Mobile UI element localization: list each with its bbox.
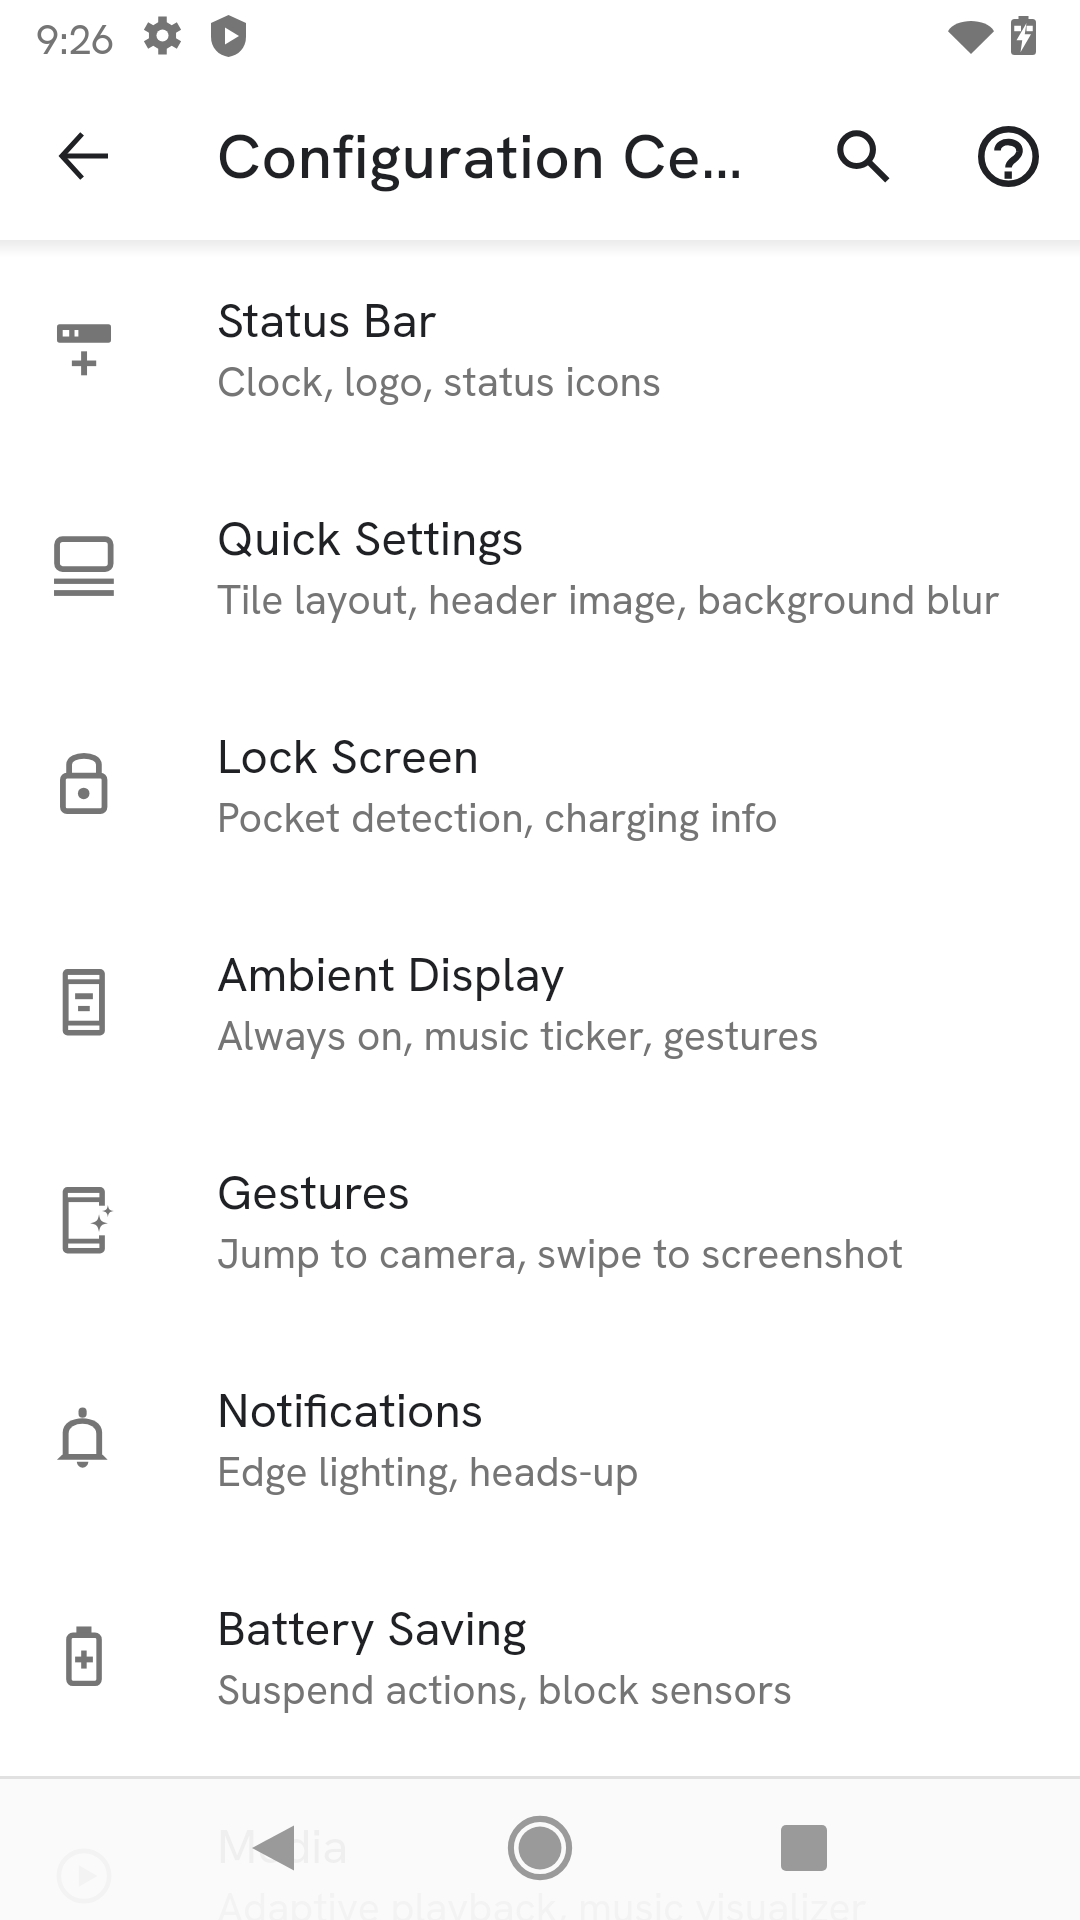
button[interactable]: Notifications [0,1336,1080,1554]
button[interactable]: Quick Settings [0,464,1080,682]
staticText: Quick Settings [217,507,524,570]
staticText: Pocket detection, charging info [217,791,779,844]
staticText: Lock Screen [217,725,480,788]
button[interactable]: Recent apps [749,1793,859,1903]
button[interactable]: Ambient Display [0,900,1080,1118]
button[interactable]: Search [815,108,911,204]
button[interactable]: Back [218,1793,328,1903]
button[interactable]: Lock Screen [0,682,1080,900]
staticText: 9:26 [36,13,115,66]
staticText: Ambient Display [217,943,565,1006]
staticText: Status Bar [217,289,438,352]
staticText: Battery Saving [217,1597,527,1660]
staticText: Media [217,1815,349,1878]
staticText: Jump to camera, swipe to screenshot [217,1227,904,1280]
button[interactable]: Status Bar [0,246,1080,464]
staticText: Gestures [217,1161,411,1224]
staticText: Tile layout, header image, background bl… [217,573,1001,626]
button[interactable]: Media [0,1772,1080,1920]
staticText: Edge lighting, heads-up [217,1445,639,1498]
button[interactable]: Help [960,108,1056,204]
button[interactable]: Home [485,1793,595,1903]
staticText: Configuration Ce… [217,116,744,197]
button[interactable]: Navigate up [36,108,132,204]
staticText: Suspend actions, block sensors [217,1663,793,1716]
staticText: Notifications [217,1379,484,1442]
button[interactable]: Battery Saving [0,1554,1080,1772]
staticText: Always on, music ticker, gestures [217,1009,819,1062]
staticText: Clock, logo, status icons [217,355,662,408]
button[interactable]: Gestures [0,1118,1080,1336]
